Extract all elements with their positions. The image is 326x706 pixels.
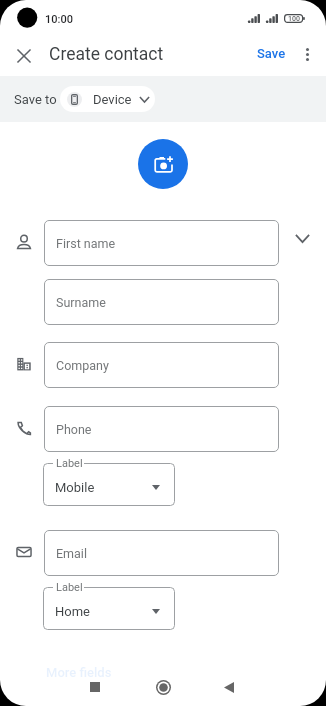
staticText: Company <box>56 358 109 373</box>
staticText: Create contact <box>49 44 164 65</box>
button[interactable]: Expand name fields <box>289 225 316 252</box>
button[interactable]: More options <box>294 42 320 68</box>
staticText: Save <box>257 46 286 61</box>
button[interactable]: Recents <box>78 670 112 704</box>
button[interactable]: Home <box>146 670 180 704</box>
button[interactable]: Home <box>43 587 175 630</box>
staticText: Phone <box>56 422 92 437</box>
button[interactable]: Back <box>212 670 246 704</box>
button[interactable]: Mobile <box>43 463 175 506</box>
staticText: More fields <box>46 665 112 680</box>
staticText: Home <box>55 604 90 619</box>
staticText: 100 <box>288 15 300 23</box>
button[interactable]: Company <box>44 342 279 388</box>
staticText: Save to <box>14 92 57 107</box>
staticText: Surname <box>56 295 106 310</box>
button[interactable]: More fields <box>40 661 118 684</box>
button[interactable]: Add photo <box>138 139 188 189</box>
staticText: Label <box>56 457 83 470</box>
button[interactable]: Phone <box>44 406 279 452</box>
staticText: Email <box>56 546 87 561</box>
staticText: First name <box>56 236 116 251</box>
button[interactable]: Surname <box>44 279 279 325</box>
staticText: 10:00 <box>45 13 73 26</box>
staticText: Mobile <box>55 480 95 495</box>
button[interactable]: First name <box>44 220 279 266</box>
button[interactable]: Close <box>10 42 37 69</box>
button[interactable]: Email <box>44 530 279 576</box>
button[interactable]: Device <box>60 86 155 112</box>
staticText: Label <box>56 581 83 594</box>
staticText: Device <box>93 92 132 107</box>
button[interactable]: Save <box>249 41 294 66</box>
